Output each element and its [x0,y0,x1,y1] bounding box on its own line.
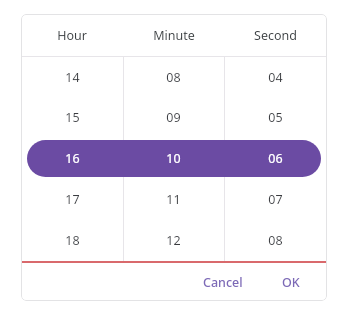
staticText: 18 [65,232,80,249]
staticText: 14 [65,69,80,86]
button[interactable]: 08 [123,57,224,97]
staticText: 07 [268,191,283,208]
button[interactable]: 14 [21,57,123,97]
staticText: 09 [166,109,181,126]
button[interactable]: 09 [123,97,224,138]
button[interactable]: 07 [224,179,327,220]
staticText: 05 [268,109,283,126]
button[interactable]: OK [273,267,309,298]
staticText: 15 [65,109,80,126]
button[interactable]: 15 [21,97,123,138]
button[interactable]: 16 [21,138,123,179]
staticText: Minute [153,27,195,44]
button[interactable]: 04 [224,57,327,97]
staticText: Second [254,27,297,44]
button[interactable]: 18 [21,220,123,261]
staticText: Cancel [203,274,243,291]
button[interactable]: 17 [21,179,123,220]
staticText: 08 [166,69,181,86]
button[interactable]: 05 [224,97,327,138]
staticText: 16 [65,150,80,167]
staticText: Hour [57,27,87,44]
staticText: 17 [65,191,80,208]
staticText: 12 [166,232,181,249]
staticText: 06 [268,150,283,167]
staticText: 08 [268,232,283,249]
button[interactable]: 10 [123,138,224,179]
button[interactable]: 06 [224,138,327,179]
staticText: 11 [166,191,181,208]
button[interactable]: 08 [224,220,327,261]
staticText: OK [282,274,300,291]
button[interactable]: 12 [123,220,224,261]
staticText: 10 [166,150,181,167]
staticText: 04 [268,69,283,86]
button[interactable]: Cancel [194,267,252,298]
button[interactable]: 11 [123,179,224,220]
